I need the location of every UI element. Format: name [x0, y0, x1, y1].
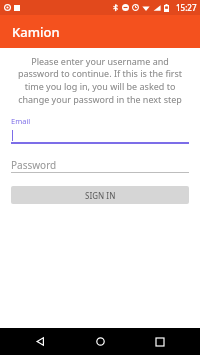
button[interactable]: SIGN IN	[11, 186, 189, 204]
button[interactable]: Password	[11, 157, 189, 173]
staticText: Please enter your username and password …	[11, 55, 189, 106]
staticText: Password	[11, 158, 57, 172]
button[interactable]: Back	[26, 328, 54, 355]
staticText: Kamion	[12, 23, 60, 41]
button[interactable]: Email	[11, 116, 189, 144]
button[interactable]: Recent apps	[146, 328, 174, 355]
staticText: 15:27	[176, 2, 197, 13]
staticText: SIGN IN	[85, 190, 116, 201]
staticText: Email	[11, 116, 31, 126]
button[interactable]: Home	[86, 328, 114, 355]
